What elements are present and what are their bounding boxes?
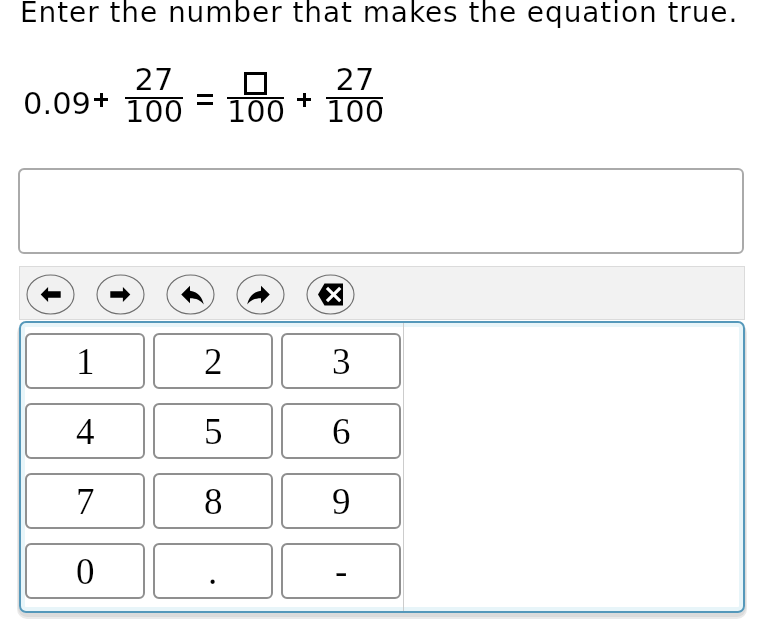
- staticText: 0.09: [0, 86, 137, 122]
- staticText: 2: [204, 341, 223, 382]
- staticText: 3: [332, 341, 351, 382]
- button[interactable]: [236, 274, 285, 315]
- button[interactable]: .: [153, 543, 273, 599]
- button[interactable]: [96, 274, 145, 315]
- staticText: 5: [204, 411, 223, 452]
- staticText: 27: [275, 62, 435, 98]
- button[interactable]: 7: [25, 473, 145, 529]
- button[interactable]: 5: [153, 403, 273, 459]
- staticText: 7: [76, 481, 95, 522]
- button[interactable]: [306, 274, 355, 315]
- button[interactable]: [166, 274, 215, 315]
- button[interactable]: [18, 168, 744, 254]
- button[interactable]: 8: [153, 473, 273, 529]
- button[interactable]: 9: [281, 473, 401, 529]
- staticText: .: [208, 551, 218, 592]
- button[interactable]: 2: [153, 333, 273, 389]
- button[interactable]: [26, 274, 75, 315]
- staticText: 27: [74, 62, 234, 98]
- staticText: 100: [74, 94, 234, 130]
- staticText: 6: [332, 411, 351, 452]
- staticText: 8: [204, 481, 223, 522]
- button[interactable]: 6: [281, 403, 401, 459]
- staticText: 1: [76, 341, 95, 382]
- staticText: 100: [176, 94, 336, 130]
- button[interactable]: 4: [25, 403, 145, 459]
- button[interactable]: 0: [25, 543, 145, 599]
- staticText: -: [335, 551, 348, 592]
- staticText: Enter the number that makes the equation…: [20, 0, 739, 29]
- button[interactable]: 3: [281, 333, 401, 389]
- staticText: 9: [332, 481, 351, 522]
- staticText: 4: [76, 411, 95, 452]
- staticText: 0: [76, 551, 95, 592]
- button[interactable]: -: [281, 543, 401, 599]
- staticText: 100: [275, 94, 435, 130]
- button[interactable]: 1: [25, 333, 145, 389]
